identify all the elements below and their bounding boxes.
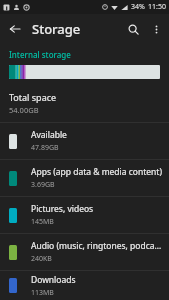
staticText: Total space: [9, 91, 57, 103]
staticText: Available: [31, 129, 67, 141]
staticText: 240KB: [31, 254, 52, 264]
staticText: Downloads: [31, 274, 76, 286]
staticText: Storage: [32, 20, 81, 38]
button[interactable]: Total space: [0, 85, 169, 122]
staticText: 3.69GB: [31, 180, 55, 190]
button[interactable]: Audio (music, ringtones, podcasts, et..: [0, 234, 169, 270]
staticText: 145MB: [31, 217, 54, 227]
button[interactable]: Pictures, videos: [0, 197, 169, 233]
button[interactable]: Available: [0, 123, 169, 159]
staticText: 113MB: [31, 288, 54, 298]
staticText: Audio (music, ringtones, podcasts, et..: [31, 240, 163, 252]
staticText: Pictures, videos: [31, 203, 94, 215]
button[interactable]: Downloads: [0, 271, 169, 300]
button[interactable]: Apps (app data & media content): [0, 160, 169, 196]
staticText: 34%: [131, 2, 145, 12]
staticText: Internal storage: [9, 49, 71, 60]
staticText: Apps (app data & media content): [31, 166, 162, 178]
button[interactable]: [9, 65, 160, 79]
button[interactable]: Search: [121, 17, 145, 41]
button[interactable]: Back: [4, 18, 26, 40]
button[interactable]: More options: [145, 18, 167, 40]
staticText: 54.00GB: [9, 105, 39, 115]
staticText: 47.89GB: [31, 143, 59, 153]
staticText: 11:50: [148, 2, 166, 12]
